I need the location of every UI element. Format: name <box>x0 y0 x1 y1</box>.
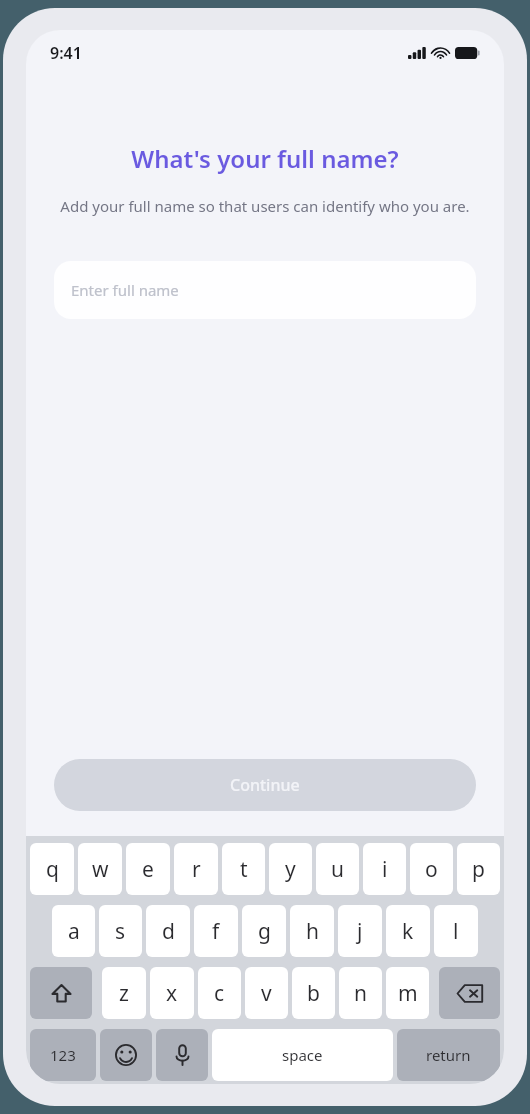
button[interactable]: Continue <box>54 759 476 811</box>
button[interactable]: y <box>269 843 312 895</box>
staticText: Add your full name so that users can ide… <box>47 196 483 216</box>
staticText: 9:41 <box>50 42 82 64</box>
button[interactable]: s <box>99 905 142 957</box>
button[interactable]: x <box>150 967 194 1019</box>
button[interactable]: t <box>222 843 265 895</box>
staticText: What's your full name? <box>26 142 504 175</box>
staticText: l <box>453 917 459 946</box>
staticText: Continue <box>230 774 300 796</box>
button[interactable]: h <box>290 905 334 957</box>
staticText: Enter full name <box>71 280 179 300</box>
button[interactable]: j <box>338 905 382 957</box>
staticText: u <box>331 855 344 884</box>
button[interactable]: Voice input <box>156 1029 208 1081</box>
staticText: e <box>142 855 154 884</box>
staticText: p <box>472 855 485 884</box>
button[interactable]: Enter full name <box>54 261 476 319</box>
button[interactable]: l <box>434 905 478 957</box>
staticText: m <box>398 979 418 1008</box>
staticText: space <box>282 1045 323 1065</box>
button[interactable]: b <box>292 967 335 1019</box>
staticText: a <box>68 917 80 946</box>
staticText: y <box>285 855 296 884</box>
staticText: i <box>382 855 388 884</box>
button[interactable]: return <box>397 1029 500 1081</box>
button[interactable]: c <box>198 967 241 1019</box>
button[interactable]: u <box>316 843 359 895</box>
staticText: j <box>357 917 363 946</box>
button[interactable]: f <box>194 905 238 957</box>
button[interactable]: z <box>102 967 146 1019</box>
button[interactable]: v <box>245 967 288 1019</box>
staticText: x <box>166 979 178 1008</box>
staticText: c <box>214 979 225 1008</box>
button[interactable]: a <box>52 905 95 957</box>
staticText: g <box>258 917 271 946</box>
staticText: 123 <box>50 1045 76 1065</box>
button[interactable]: k <box>386 905 430 957</box>
button[interactable]: Emoji <box>100 1029 152 1081</box>
button[interactable]: Shift <box>30 967 92 1019</box>
button[interactable]: m <box>386 967 429 1019</box>
button[interactable]: g <box>242 905 286 957</box>
button[interactable]: n <box>339 967 382 1019</box>
staticText: z <box>119 979 129 1008</box>
staticText: return <box>426 1045 471 1065</box>
staticText: s <box>115 917 126 946</box>
button[interactable]: Backspace <box>439 967 500 1019</box>
staticText: d <box>162 917 175 946</box>
button[interactable]: e <box>126 843 170 895</box>
staticText: q <box>46 855 59 884</box>
button[interactable]: q <box>30 843 74 895</box>
button[interactable]: o <box>410 843 453 895</box>
staticText: k <box>402 917 414 946</box>
staticText: o <box>425 855 438 884</box>
staticText: h <box>306 917 319 946</box>
button[interactable]: p <box>457 843 500 895</box>
staticText: t <box>240 855 248 884</box>
staticText: b <box>307 979 320 1008</box>
button[interactable]: 123 <box>30 1029 96 1081</box>
button[interactable]: d <box>146 905 190 957</box>
staticText: w <box>92 855 109 884</box>
button[interactable]: w <box>78 843 122 895</box>
staticText: n <box>354 979 367 1008</box>
staticText: v <box>261 979 272 1008</box>
button[interactable]: r <box>174 843 218 895</box>
staticText: f <box>212 917 220 946</box>
button[interactable]: space <box>212 1029 393 1081</box>
staticText: r <box>192 855 201 884</box>
button[interactable]: i <box>363 843 406 895</box>
